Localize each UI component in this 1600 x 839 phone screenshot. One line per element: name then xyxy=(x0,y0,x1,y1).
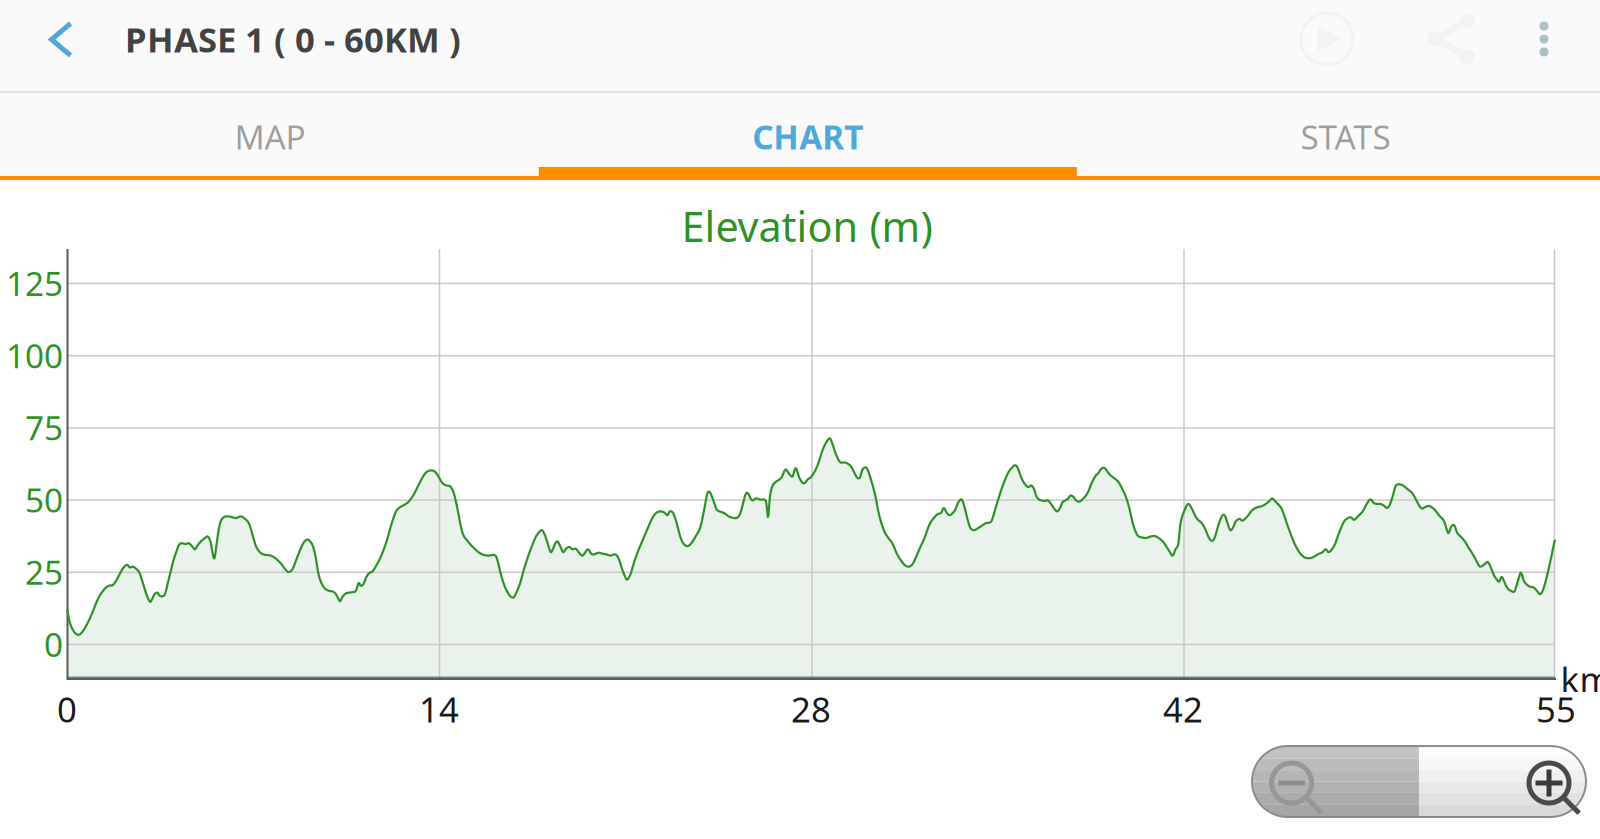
button[interactable]: Zoom in xyxy=(1419,746,1586,817)
staticText: Elevation (m) xyxy=(681,199,932,253)
button[interactable]: Zoom out xyxy=(1252,746,1419,817)
button[interactable]: Back xyxy=(6,0,116,85)
staticText: 100 xyxy=(6,333,63,377)
staticText: km xyxy=(1560,656,1600,702)
staticText: 125 xyxy=(6,261,63,305)
staticText: 0 xyxy=(57,686,77,732)
staticText: PHASE 1 ( 0 - 60KM ) xyxy=(125,16,461,62)
staticText: 14 xyxy=(419,686,459,732)
staticText: 55 xyxy=(1536,686,1576,732)
staticText: 42 xyxy=(1163,686,1203,732)
button[interactable]: CHART xyxy=(539,93,1077,180)
button[interactable]: More options xyxy=(1504,0,1584,84)
staticText: MAP xyxy=(234,114,305,159)
staticText: 75 xyxy=(25,405,63,450)
staticText: CHART xyxy=(752,114,863,159)
button[interactable]: STATS xyxy=(1077,93,1600,180)
staticText: 50 xyxy=(25,477,63,522)
staticText: 0 xyxy=(44,622,63,666)
staticText: STATS xyxy=(1301,114,1391,159)
staticText: 25 xyxy=(25,550,63,594)
staticText: 28 xyxy=(791,686,831,732)
button[interactable]: MAP xyxy=(1,93,539,180)
